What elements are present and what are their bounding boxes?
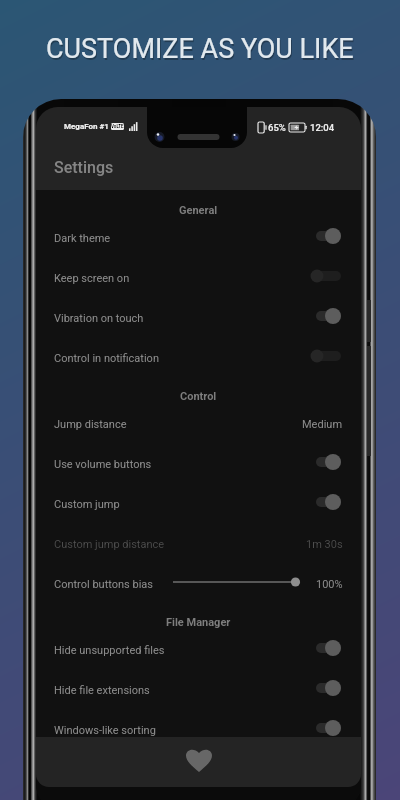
- button[interactable]: Hide file extensions: [36, 668, 361, 708]
- staticText: File Manager: [166, 616, 231, 629]
- staticText: Windows-like sorting: [54, 724, 156, 737]
- staticText: Control in notification: [54, 352, 159, 365]
- staticText: 1m 30s: [306, 538, 343, 551]
- staticText: MegaFon #1: [64, 122, 109, 131]
- staticText: 65%: [268, 122, 286, 133]
- staticText: 100%: [316, 578, 343, 591]
- staticText: VoLTE: [111, 124, 124, 129]
- button[interactable]: Use volume buttons: [36, 442, 361, 482]
- staticText: Medium: [302, 418, 343, 431]
- staticText: 12:04: [310, 122, 335, 133]
- button[interactable]: Vibration on touch: [36, 296, 361, 336]
- staticText: Settings: [54, 158, 114, 177]
- staticText: Use volume buttons: [54, 458, 152, 471]
- staticText: Keep screen on: [54, 272, 130, 285]
- button[interactable]: Dark theme: [36, 216, 361, 256]
- button[interactable]: Jump distance: [36, 402, 361, 442]
- staticText: Control buttons bias: [54, 578, 153, 591]
- staticText: Hide unsupported files: [54, 644, 165, 657]
- button[interactable]: Favorites: [36, 737, 361, 787]
- staticText: Control: [180, 390, 217, 403]
- button[interactable]: Custom jump distance: [36, 522, 361, 562]
- staticText: Custom jump distance: [54, 538, 165, 551]
- staticText: Vibration on touch: [54, 312, 144, 325]
- button[interactable]: Hide unsupported files: [36, 628, 361, 668]
- button[interactable]: Custom jump: [36, 482, 361, 522]
- staticText: Hide file extensions: [54, 684, 150, 697]
- button[interactable]: Windows-like sorting: [36, 708, 361, 748]
- staticText: Jump distance: [54, 418, 127, 431]
- staticText: Dark theme: [54, 232, 111, 245]
- button[interactable]: Control in notification: [36, 336, 361, 376]
- staticText: CUSTOMIZE AS YOU LIKE: [46, 33, 354, 65]
- staticText: Custom jump: [54, 498, 120, 511]
- staticText: General: [179, 204, 218, 217]
- staticText: CUSTOMIZE AS YOU LIKE: [47, 35, 355, 67]
- button[interactable]: Keep screen on: [36, 256, 361, 296]
